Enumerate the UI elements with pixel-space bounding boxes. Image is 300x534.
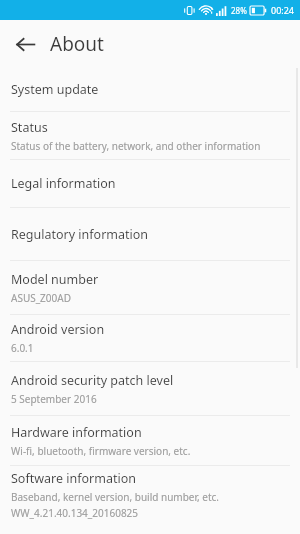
button[interactable]: Android version: [0, 315, 300, 361]
button[interactable]: Legal information: [0, 160, 300, 207]
staticText: System update: [11, 81, 99, 98]
button[interactable]: Android security patch level: [0, 362, 300, 415]
staticText: 00:24: [271, 4, 295, 16]
staticText: WW_4.21.40.134_20160825: [11, 506, 139, 520]
staticText: ASUS_Z00AD: [11, 291, 71, 305]
staticText: 6.0.1: [11, 341, 34, 355]
button[interactable]: Back: [8, 27, 42, 61]
staticText: Status: [11, 119, 48, 136]
button[interactable]: Hardware information: [0, 416, 300, 465]
button[interactable]: Status: [0, 112, 300, 159]
staticText: About: [50, 31, 104, 57]
staticText: Status of the battery, network, and othe…: [11, 139, 261, 153]
staticText: Android security patch level: [11, 372, 174, 389]
staticText: Legal information: [11, 175, 116, 192]
staticText: Regulatory information: [11, 226, 149, 243]
staticText: Software information: [11, 470, 136, 487]
button[interactable]: System update: [0, 68, 300, 111]
staticText: 28%: [231, 5, 247, 16]
staticText: Model number: [11, 271, 99, 288]
button[interactable]: Model number: [0, 261, 300, 314]
staticText: Android version: [11, 321, 105, 338]
staticText: Wi-fi, bluetooth, firmware version, etc.: [11, 444, 191, 458]
staticText: Hardware information: [11, 424, 142, 441]
button[interactable]: Software information: [0, 466, 300, 524]
staticText: Baseband, kernel version, build number, …: [11, 490, 220, 504]
button[interactable]: Regulatory information: [0, 208, 300, 260]
staticText: 5 September 2016: [11, 392, 97, 406]
